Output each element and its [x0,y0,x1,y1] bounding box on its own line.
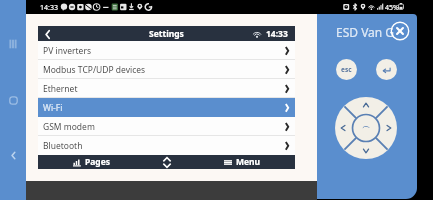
staticText: Bluetooth [43,140,83,152]
button[interactable]: Home [3,90,23,110]
staticText: esc [341,65,352,74]
staticText: Pages [85,156,111,168]
button[interactable]: Ethernet [38,79,295,98]
staticText: Ethernet [43,83,78,95]
button[interactable]: Scroll up or down [160,155,174,169]
button[interactable]: Wi-Fi [38,98,295,117]
staticText: Settings [149,28,184,40]
staticText: Menu [236,156,261,168]
button[interactable]: esc [336,59,357,80]
button[interactable]: Back [3,145,23,165]
staticText: Wi-Fi [43,102,63,114]
button[interactable]: Pages [73,156,111,168]
staticText: ESD Van G [336,24,395,40]
staticText: Modbus TCP/UDP devices [43,64,146,76]
staticText: 14:33 [40,3,58,13]
button[interactable]: Menu [224,156,261,168]
button[interactable]: PV inverters [38,41,295,60]
button[interactable]: Bluetooth [38,136,295,155]
button[interactable]: Modbus TCP/UDP devices [38,60,295,79]
staticText: 45% [385,3,399,13]
button[interactable]: GSM modem [38,117,295,136]
staticText: 14:33 [266,28,288,40]
button[interactable]: Recent apps [3,34,23,54]
button[interactable]: Enter [376,59,397,80]
staticText: PV inverters [43,45,91,57]
staticText: GSM modem [43,121,95,133]
button[interactable]: Close [390,21,410,41]
button[interactable]: Back [39,27,53,41]
